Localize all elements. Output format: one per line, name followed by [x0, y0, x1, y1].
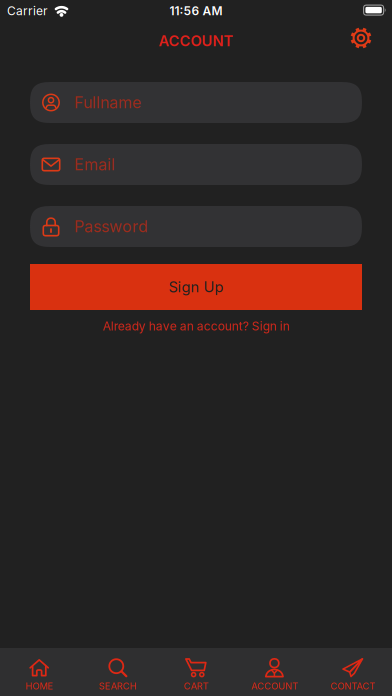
staticText: Fullname [74, 93, 141, 112]
button[interactable]: Already have an account? Sign in [102, 319, 289, 333]
button[interactable]: Sign Up [30, 264, 362, 310]
button[interactable]: SEARCH [78, 648, 157, 696]
button[interactable]: CONTACT [314, 648, 392, 696]
button[interactable]: Fullname [30, 82, 362, 123]
staticText: ACCOUNT [251, 680, 298, 691]
staticText: SEARCH [99, 680, 137, 691]
staticText: ACCOUNT [158, 32, 233, 50]
staticText: Email [74, 155, 115, 174]
staticText: HOME [25, 680, 53, 691]
staticText: CART [183, 680, 208, 691]
button[interactable]: CART [157, 648, 235, 696]
staticText: Carrier [7, 4, 48, 18]
button[interactable]: Email [30, 144, 362, 185]
staticText: 11:56 AM [169, 4, 222, 18]
staticText: Sign Up [168, 278, 223, 296]
staticText: Password [74, 217, 148, 236]
staticText: CONTACT [330, 680, 375, 691]
button[interactable]: HOME [0, 648, 78, 696]
button[interactable]: Settings [350, 27, 372, 49]
button[interactable]: Password [30, 206, 362, 247]
button[interactable]: ACCOUNT [235, 648, 314, 696]
staticText: Already have an account? Sign in [102, 319, 289, 333]
